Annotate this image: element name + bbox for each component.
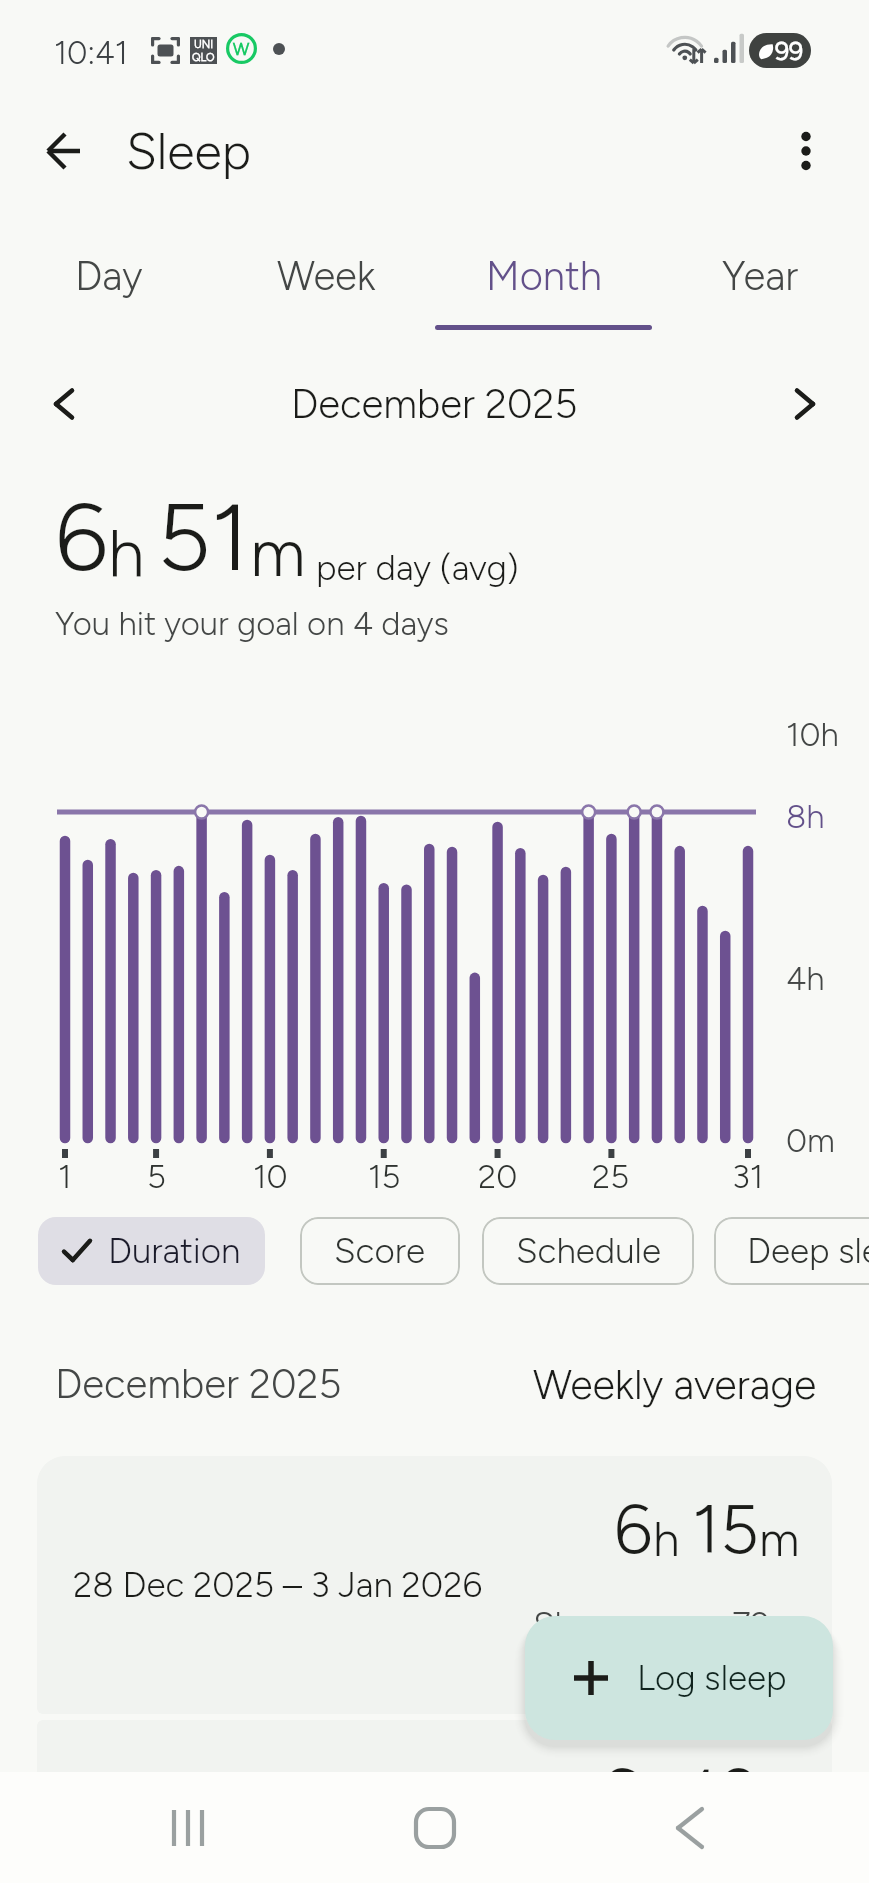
button[interactable]: 6 [37,1720,832,1840]
button[interactable]: Home [395,1788,475,1868]
staticText: 6 [601,1752,640,1834]
staticText: 25 [592,1157,630,1197]
staticText: Month [486,252,602,300]
staticText: Week [277,252,376,300]
staticText: Deep sleep [747,1230,869,1272]
staticText: Sleep [126,121,251,181]
staticText: 8h [786,797,825,837]
staticText: 31 [732,1157,764,1197]
staticText: h [108,513,145,592]
staticText: 6 [614,1488,653,1570]
button[interactable]: Year [652,200,869,340]
button[interactable]: Month [435,200,652,340]
button[interactable]: Week [218,200,435,340]
staticText: Year [722,252,799,300]
staticText: Score [334,1230,426,1272]
staticText: UNI [194,38,214,51]
button[interactable]: Back [648,1788,728,1868]
staticText: m [250,513,306,592]
staticText: QLO [192,51,215,64]
button[interactable]: Next month [773,372,837,436]
staticText: per day (avg) [316,547,519,589]
staticText: 4h [786,959,825,999]
staticText: Sleep score: 72 • [533,1604,796,1646]
button[interactable]: Schedule [482,1217,694,1285]
staticText: Log sleep [637,1657,787,1699]
button[interactable]: Day [0,200,218,340]
button[interactable]: Duration [38,1217,265,1285]
staticText: 42 [679,1752,759,1834]
button[interactable]: Recent apps [148,1788,228,1868]
staticText: December 2025 [55,1360,342,1408]
staticText: m [759,1510,800,1568]
staticText: You hit your goal on 4 days [55,604,449,644]
staticText: 10h [786,715,839,755]
button[interactable]: 28 Dec 2025 – 3 Jan 2026 [37,1456,832,1714]
button[interactable]: Navigate up [26,113,102,189]
staticText: 0m [786,1121,835,1161]
staticText: Duration [108,1230,241,1272]
button[interactable]: Score [300,1217,460,1285]
staticText: Schedule [516,1230,661,1272]
staticText: December 2025 [291,380,578,428]
staticText: 15 [368,1157,401,1197]
staticText: Weekly average [533,1360,817,1409]
staticText: 6 [55,481,108,594]
staticText: 51 [157,481,250,594]
staticText: 15 [692,1488,759,1570]
staticText: 20 [478,1157,518,1197]
staticText: Day [75,252,143,300]
staticText: 5 [147,1157,166,1197]
staticText: 99 [775,36,804,66]
staticText: 28 Dec 2025 – 3 Jan 2026 [73,1564,483,1606]
button[interactable]: Deep sleep [714,1217,869,1285]
button[interactable]: Log sleep [525,1616,833,1740]
staticText: 10:41 [54,34,128,72]
staticText: W [233,39,250,59]
staticText: 10 [253,1157,288,1197]
button[interactable]: More options [770,115,842,187]
staticText: 1 [58,1157,72,1197]
button[interactable]: Previous month [32,372,96,436]
staticText: h [653,1510,680,1568]
